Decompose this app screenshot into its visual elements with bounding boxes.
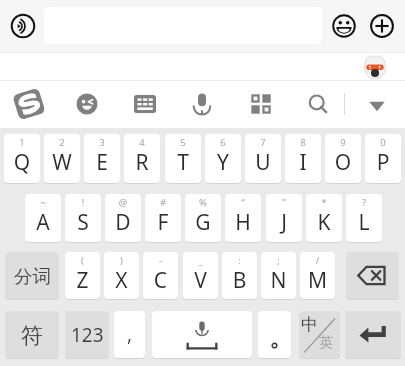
button[interactable]: 2	[44, 134, 80, 183]
button[interactable]: ”	[266, 194, 302, 242]
staticText: U	[245, 148, 281, 177]
button[interactable]: ~	[25, 194, 61, 242]
staticText: Z	[65, 266, 100, 295]
button[interactable]: Emoji	[326, 8, 362, 44]
staticText: /	[300, 254, 335, 267]
staticText: B	[222, 266, 257, 295]
button[interactable]: 4	[124, 134, 160, 183]
staticText: 3	[84, 136, 120, 149]
button[interactable]: ;	[261, 252, 296, 299]
staticText: 123	[71, 322, 104, 348]
staticText: P	[365, 148, 401, 177]
staticText: :	[222, 254, 257, 267]
button[interactable]: *	[306, 194, 342, 242]
staticText: V	[183, 266, 218, 295]
staticText: ~	[25, 196, 61, 209]
staticText: ”	[266, 196, 302, 209]
staticText: !	[65, 196, 101, 209]
button[interactable]: Backspace	[346, 252, 399, 299]
button[interactable]: 6	[205, 134, 241, 183]
button[interactable]: :	[222, 252, 257, 299]
staticText: F	[145, 208, 181, 237]
button[interactable]: Emoticons	[68, 81, 106, 127]
staticText: 8	[285, 136, 321, 149]
button[interactable]: 9	[325, 134, 361, 183]
staticText: “	[225, 196, 261, 209]
button[interactable]: Sogou input settings	[363, 55, 387, 79]
staticText: X	[104, 266, 139, 295]
button[interactable]: _	[183, 252, 218, 299]
staticText: %	[185, 196, 221, 209]
staticText: T	[165, 148, 201, 177]
button[interactable]: 1	[4, 134, 40, 183]
staticText: ,	[127, 321, 133, 347]
staticText: C	[143, 266, 178, 295]
button[interactable]: )	[104, 252, 139, 299]
staticText: 9	[325, 136, 361, 149]
button[interactable]: Chinese English toggle	[299, 311, 340, 358]
staticText: -	[143, 254, 178, 267]
button[interactable]: 0	[365, 134, 401, 183]
staticText: E	[84, 148, 120, 177]
button[interactable]: 8	[285, 134, 321, 183]
staticText: *	[306, 196, 342, 209]
staticText: 1	[4, 136, 40, 149]
button[interactable]: ,	[114, 311, 145, 358]
button[interactable]: /	[300, 252, 335, 299]
staticText: 7	[245, 136, 281, 149]
button[interactable]: Space	[152, 311, 252, 358]
button[interactable]: Enter	[345, 311, 401, 358]
button[interactable]: Keyboard layout	[126, 81, 164, 127]
button[interactable]: “	[225, 194, 261, 242]
staticText: ?	[346, 196, 382, 209]
button[interactable]: 5	[165, 134, 201, 183]
staticText: ;	[261, 254, 296, 267]
button[interactable]: 7	[245, 134, 281, 183]
staticText: _	[183, 254, 218, 267]
staticText: A	[25, 208, 61, 237]
staticText: R	[124, 148, 160, 177]
staticText: 中	[301, 314, 318, 335]
button[interactable]: Voice input	[5, 8, 41, 44]
staticText: L	[346, 208, 382, 237]
button[interactable]: !	[65, 194, 101, 242]
staticText: Y	[205, 148, 241, 177]
staticText: J	[266, 208, 302, 237]
staticText: 分词	[14, 265, 51, 288]
staticText: D	[105, 208, 141, 237]
staticText: K	[306, 208, 342, 237]
staticText: (	[65, 254, 100, 267]
button[interactable]: More panels	[242, 81, 280, 127]
staticText: )	[104, 254, 139, 267]
button[interactable]: @	[105, 194, 141, 242]
staticText: I	[285, 148, 321, 177]
button[interactable]: (	[65, 252, 100, 299]
button[interactable]: %	[185, 194, 221, 242]
button[interactable]: 123	[65, 311, 109, 358]
button[interactable]: Sogou panel	[10, 81, 48, 127]
staticText: 4	[124, 136, 160, 149]
staticText: Q	[4, 148, 40, 177]
staticText: O	[325, 148, 361, 177]
button[interactable]: -	[143, 252, 178, 299]
button[interactable]: Collapse	[358, 81, 396, 127]
button[interactable]: Add	[364, 8, 400, 44]
button[interactable]: Voice input	[183, 81, 221, 127]
button[interactable]: 分词	[5, 252, 59, 299]
button[interactable]: Period	[258, 311, 291, 358]
button[interactable]: ?	[346, 194, 382, 242]
staticText: N	[261, 266, 296, 295]
button[interactable]: 3	[84, 134, 120, 183]
staticText: M	[300, 266, 335, 295]
staticText: 0	[365, 136, 401, 149]
staticText: W	[44, 148, 80, 177]
staticText: S	[65, 208, 101, 237]
staticText: @	[105, 196, 141, 209]
staticText: #	[145, 196, 181, 209]
staticText: 6	[205, 136, 241, 149]
staticText: 2	[44, 136, 80, 149]
button[interactable]: #	[145, 194, 181, 242]
button[interactable]: 符	[5, 311, 59, 358]
button[interactable]: Search	[298, 81, 336, 127]
